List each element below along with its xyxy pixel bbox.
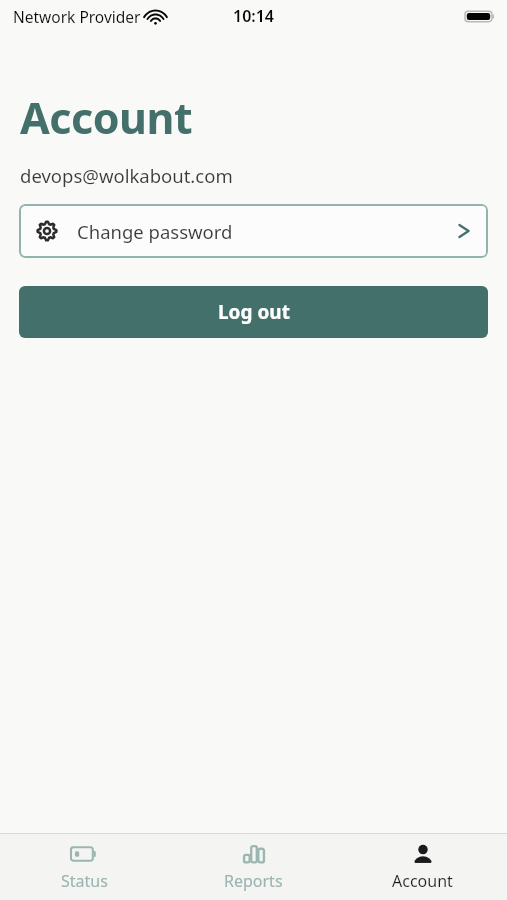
staticText: 10:14 (233, 5, 275, 27)
staticText: Status (61, 870, 108, 892)
staticText: Log out (218, 299, 290, 325)
staticText: Network Provider (13, 6, 141, 27)
staticText: Account (20, 88, 193, 147)
staticText: Reports (224, 870, 283, 892)
staticText: Change password (77, 219, 233, 244)
staticText: devops@wolkabout.com (20, 163, 233, 188)
button[interactable]: Account (338, 843, 507, 892)
button[interactable]: Change password (19, 204, 488, 258)
button[interactable]: Reports (169, 843, 338, 892)
button[interactable]: Status (0, 843, 169, 892)
staticText: Account (392, 870, 453, 892)
button[interactable]: Log out (19, 286, 488, 338)
